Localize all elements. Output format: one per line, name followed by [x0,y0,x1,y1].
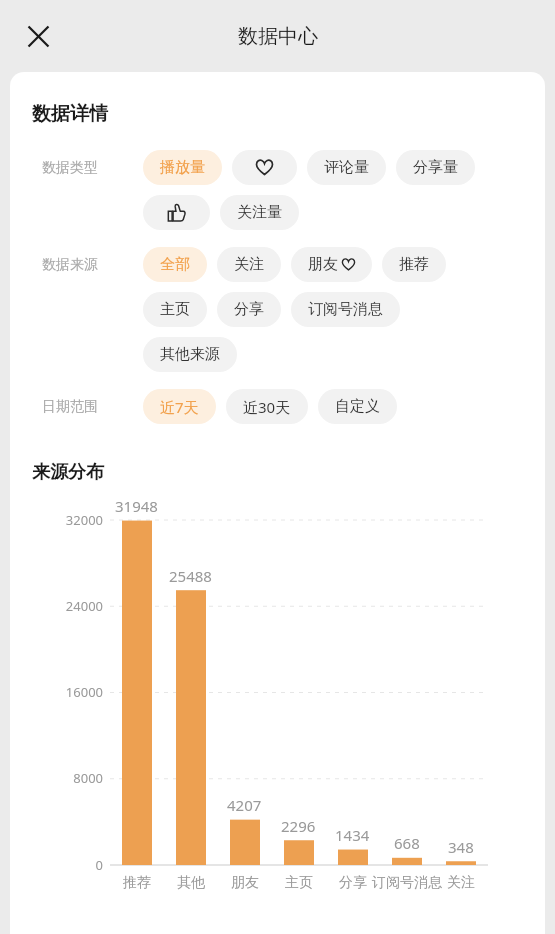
staticText: 近30天 [243,397,291,417]
staticText: 来源分布 [32,461,104,484]
button[interactable]: 其他来源 [143,337,237,372]
staticText: 推荐 [399,255,429,274]
staticText: 348 [448,837,474,857]
button[interactable]: 点赞量 [232,150,297,185]
staticText: 2296 [281,816,316,836]
button[interactable]: 订阅号消息 [291,292,400,327]
staticText: 近7天 [160,397,199,417]
button[interactable]: 朋友 [291,247,372,282]
staticText: 订阅号消息 [308,300,383,319]
staticText: 推荐 [123,874,151,892]
button[interactable]: 近30天 [226,389,308,424]
staticText: 关注 [234,255,264,274]
staticText: 32000 [38,511,103,529]
staticText: 日期范围 [42,398,98,416]
staticText: 全部 [160,255,190,274]
button[interactable]: 近7天 [143,389,216,424]
staticText: 数据中心 [238,24,318,49]
staticText: 数据类型 [42,159,98,177]
button[interactable]: 在看量 [143,195,210,230]
button[interactable]: 评论量 [307,150,386,185]
staticText: 其他来源 [160,345,220,364]
staticText: 24000 [38,597,103,615]
staticText: 分享 [339,874,367,892]
staticText: 分享量 [413,158,458,177]
staticText: 31948 [115,496,158,516]
staticText: 主页 [285,874,313,892]
staticText: 订阅号消息 [372,874,442,892]
button[interactable]: 播放量 [143,150,222,185]
staticText: 播放量 [160,158,205,177]
staticText: 主页 [160,300,190,319]
staticText: 16000 [38,683,103,701]
staticText: 自定义 [335,397,380,416]
staticText: 其他 [177,874,205,892]
staticText: 评论量 [324,158,369,177]
button[interactable]: 主页 [143,292,207,327]
staticText: 数据来源 [42,256,98,274]
button[interactable]: 关闭 [16,14,60,58]
staticText: 0 [38,856,103,874]
button[interactable]: 全部 [143,247,207,282]
staticText: 25488 [169,566,212,586]
button[interactable]: 自定义 [318,389,397,424]
button[interactable]: 关注 [217,247,281,282]
staticText: 朋友 [308,255,338,274]
staticText: 4207 [227,795,262,815]
staticText: 1434 [335,825,370,845]
button[interactable]: 分享 [217,292,281,327]
staticText: 关注 [447,874,475,892]
button[interactable]: 推荐 [382,247,446,282]
staticText: 数据详情 [32,102,108,126]
staticText: 8000 [38,769,103,787]
button[interactable]: 分享量 [396,150,475,185]
staticText: 668 [394,833,420,853]
button[interactable]: 关注量 [220,195,299,230]
staticText: 分享 [234,300,264,319]
staticText: 朋友 [231,874,259,892]
staticText: 关注量 [237,203,282,222]
